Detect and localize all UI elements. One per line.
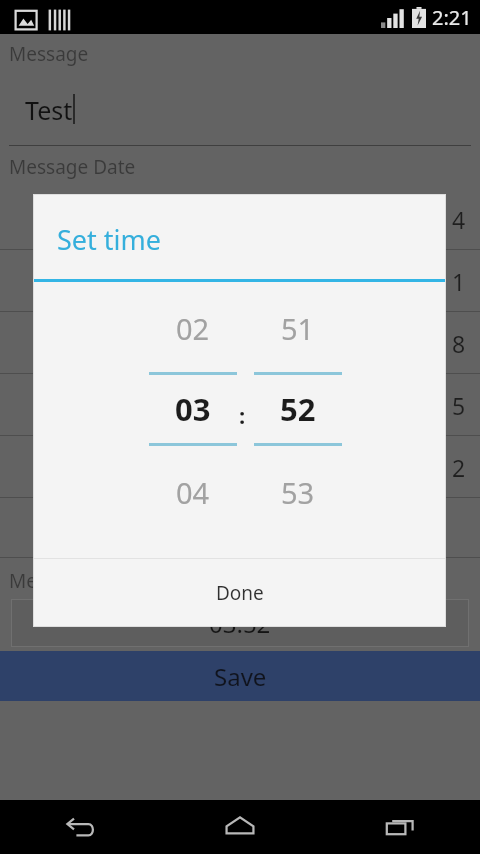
staticText: Save xyxy=(214,660,267,693)
staticText: 02 xyxy=(176,309,210,348)
staticText: 4 xyxy=(452,204,466,235)
staticText: Done xyxy=(216,580,264,606)
button[interactable]: Done xyxy=(34,559,445,626)
staticText: 52 xyxy=(280,388,316,430)
staticText: 1 xyxy=(452,266,466,297)
staticText: Message Date xyxy=(9,154,136,180)
staticText: 04 xyxy=(176,473,210,512)
staticText: Set time xyxy=(57,221,162,258)
staticText: 03:52 xyxy=(209,607,271,640)
button[interactable]: 51 xyxy=(251,282,345,558)
staticText: Message Time xyxy=(9,568,138,594)
button[interactable]: 03:52 xyxy=(12,600,468,646)
button[interactable]: Recent apps xyxy=(368,800,432,854)
staticText: Test xyxy=(25,93,73,127)
staticText: 53 xyxy=(281,473,315,512)
staticText: 2 xyxy=(452,452,466,483)
staticText: : xyxy=(239,400,246,430)
button[interactable]: Home xyxy=(208,800,272,854)
staticText: 5 xyxy=(452,390,466,421)
button[interactable]: Back xyxy=(48,800,112,854)
staticText: 03 xyxy=(175,388,211,430)
button[interactable]: Save xyxy=(0,651,480,701)
staticText: 51 xyxy=(281,309,315,348)
staticText: Message xyxy=(9,41,89,67)
button[interactable]: 02 xyxy=(146,282,240,558)
staticText: 2:21 xyxy=(432,4,472,31)
staticText: 8 xyxy=(452,328,466,359)
